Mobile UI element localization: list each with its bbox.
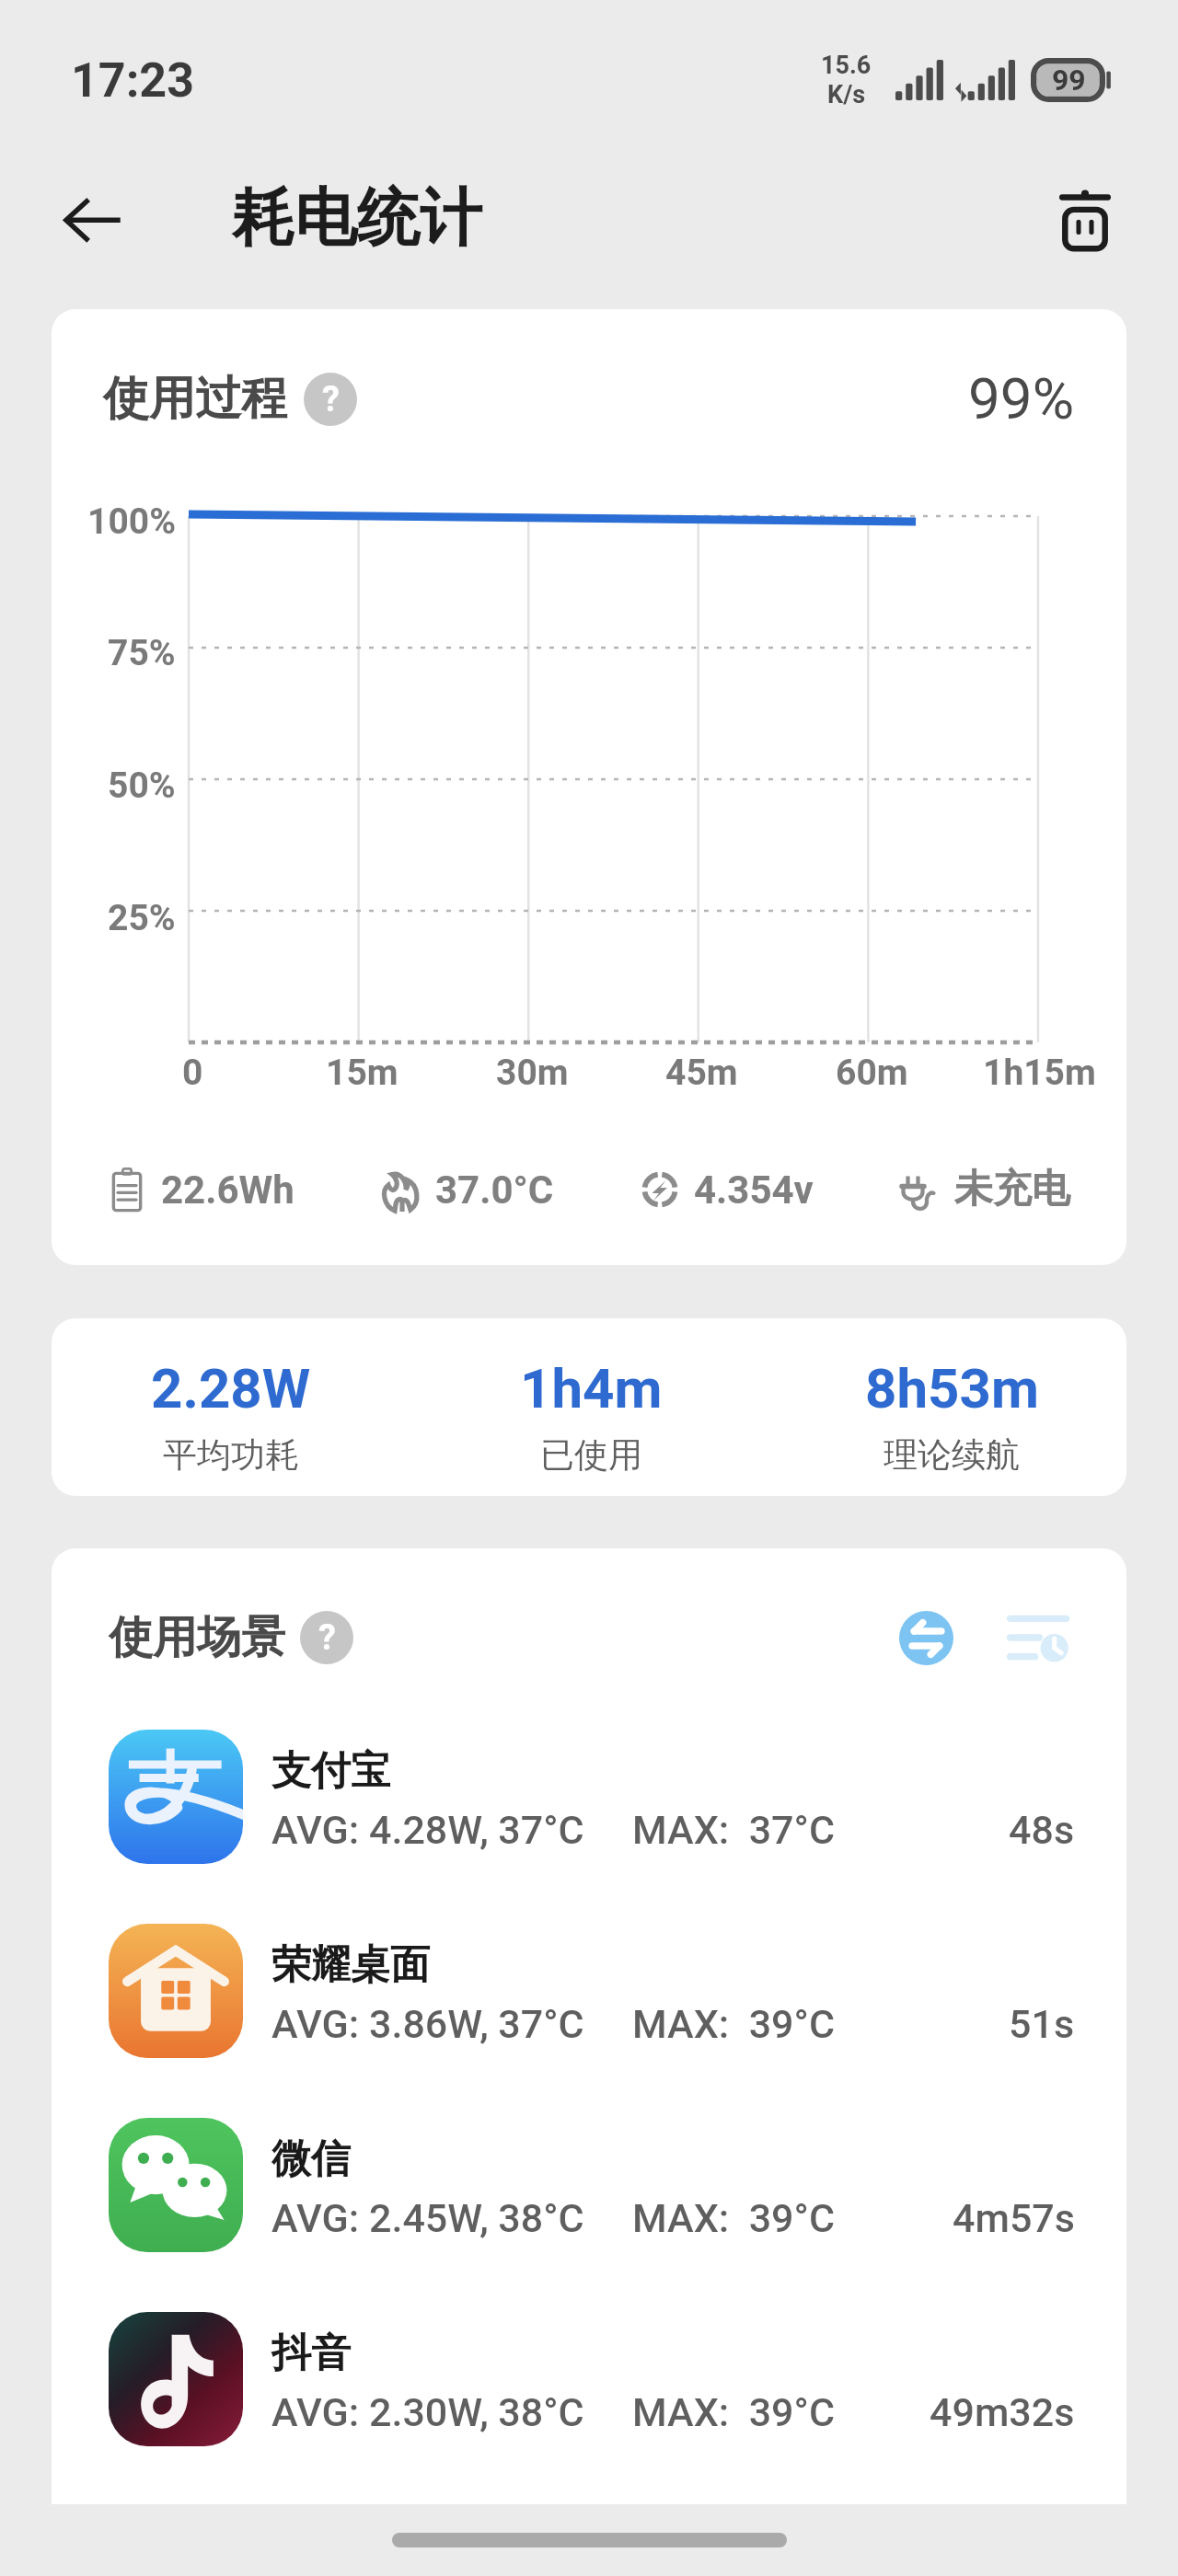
staticText: AVG: 2.30W, 38°C [271, 2389, 584, 2435]
staticText: 100% [87, 500, 176, 543]
staticText: AVG: 4.28W, 37°C [271, 1807, 584, 1853]
staticText: MAX: 39°C [632, 2389, 835, 2435]
staticText: 37.0°C [435, 1167, 554, 1213]
staticText: 50% [108, 765, 176, 807]
button[interactable]: Help [304, 373, 357, 426]
staticText: 1h4m [520, 1356, 663, 1420]
staticText: K/s [827, 80, 866, 109]
staticText: 未充电 [954, 1165, 1070, 1213]
staticText: 微信 [271, 2134, 351, 2184]
button[interactable]: 荣耀桌面 [52, 1893, 1126, 2087]
staticText: 平均功耗 [163, 1433, 299, 1477]
button[interactable]: Help [300, 1611, 353, 1664]
staticText: MAX: 37°C [632, 1807, 835, 1853]
staticText: 0 [182, 1052, 203, 1094]
button[interactable]: Delete [1034, 168, 1136, 270]
staticText: 4.354v [694, 1167, 814, 1213]
staticText: 49m32s [930, 2389, 1075, 2435]
staticText: AVG: 2.45W, 38°C [271, 2195, 584, 2241]
staticText: 60m [836, 1052, 908, 1094]
staticText: 使用场景 [109, 1610, 285, 1665]
staticText: ? [322, 379, 340, 420]
button[interactable]: Back [37, 164, 147, 274]
staticText: 45m [665, 1052, 738, 1094]
staticText: 15.6 [821, 51, 872, 80]
staticText: 耗电统计 [232, 179, 482, 259]
staticText: 99 [1052, 63, 1086, 98]
staticText: AVG: 3.86W, 37°C [271, 2001, 584, 2047]
staticText: 48s [1009, 1807, 1075, 1853]
button[interactable]: Time order [1003, 1603, 1073, 1673]
staticText: 30m [496, 1052, 569, 1094]
staticText: MAX: 39°C [632, 2195, 835, 2241]
button[interactable]: 支付宝 [52, 1699, 1126, 1893]
staticText: 抖音 [271, 2329, 351, 2378]
staticText: 99% [968, 365, 1075, 432]
staticText: MAX: 39°C [632, 2001, 835, 2047]
staticText: ? [318, 1617, 336, 1659]
staticText: 25% [108, 897, 176, 939]
staticText: 理论续航 [883, 1433, 1020, 1477]
staticText: 75% [108, 632, 176, 674]
staticText: 1h15m [983, 1052, 1096, 1094]
staticText: 使用过程 [103, 370, 287, 428]
staticText: 支付宝 [271, 1746, 390, 1796]
staticText: 51s [1009, 2001, 1075, 2047]
button[interactable]: Sort order [891, 1603, 961, 1673]
staticText: 荣耀桌面 [271, 1940, 430, 1990]
button[interactable]: 微信 [52, 2087, 1126, 2282]
staticText: 15m [326, 1052, 398, 1094]
button[interactable]: 抖音 [52, 2282, 1126, 2476]
staticText: 8h53m [865, 1356, 1039, 1420]
staticText: 4m57s [953, 2195, 1075, 2241]
staticText: 2.28W [151, 1356, 311, 1420]
staticText: 22.6Wh [161, 1167, 294, 1213]
staticText: 17:23 [71, 52, 195, 109]
staticText: 已使用 [540, 1433, 642, 1477]
